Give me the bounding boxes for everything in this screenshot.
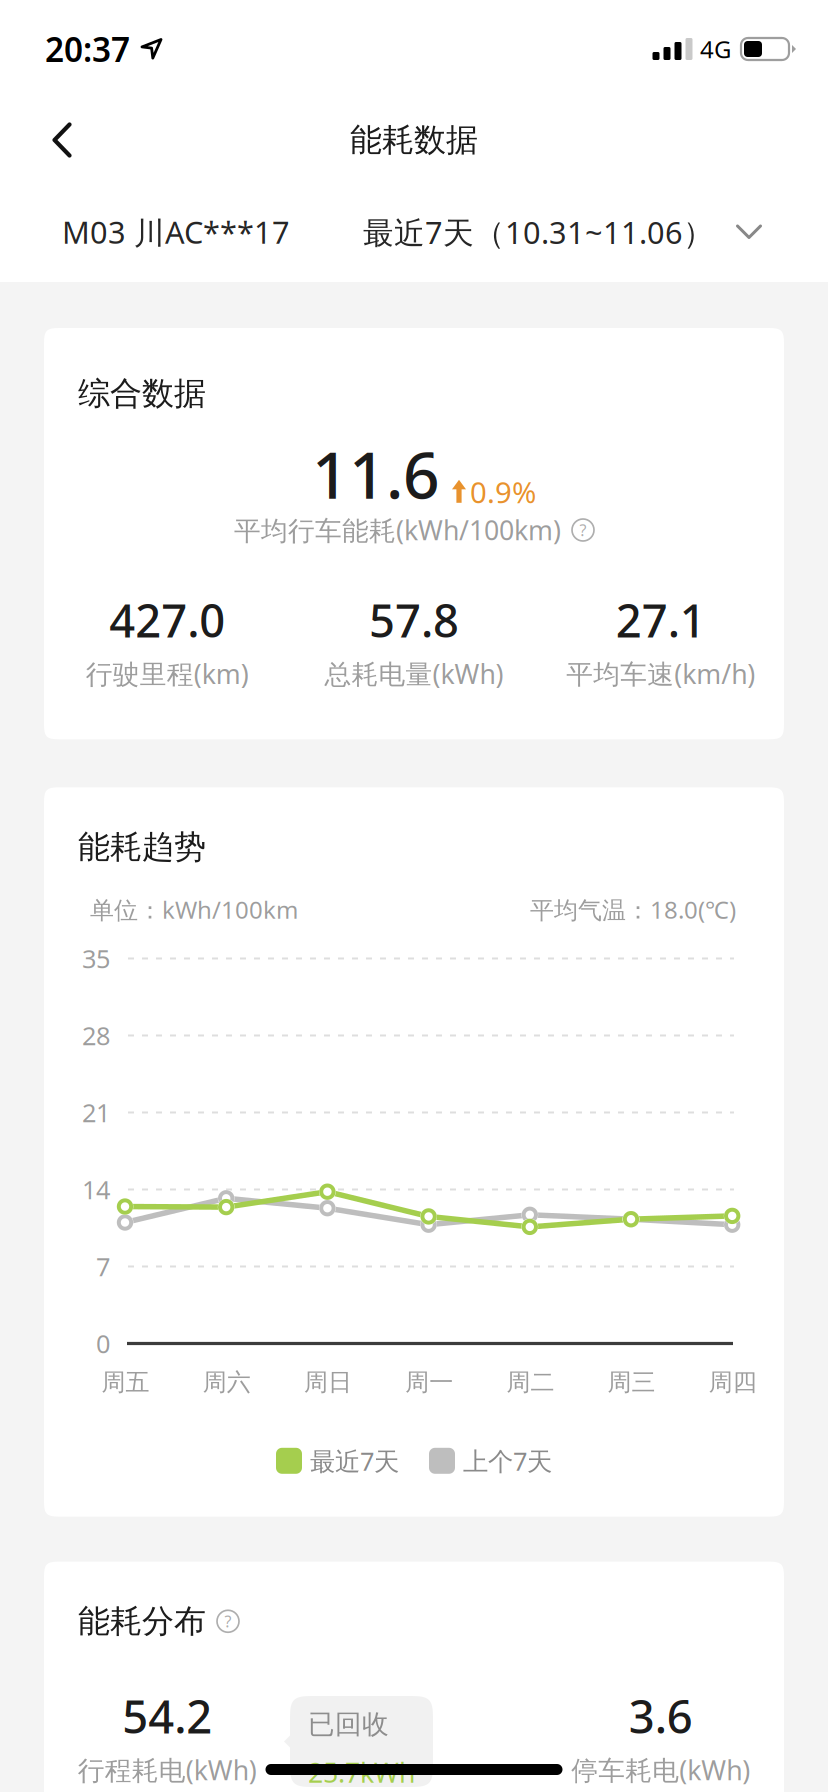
staticText: 14 — [82, 1173, 110, 1206]
staticText: 周三 — [608, 1367, 656, 1397]
staticText: 上个7天 — [463, 1444, 552, 1478]
staticText: 35 — [82, 942, 110, 975]
staticText: 周二 — [506, 1367, 554, 1397]
staticText: 28 — [82, 1019, 110, 1052]
staticText: 21 — [82, 1096, 110, 1129]
staticText: 最近7天 — [310, 1444, 399, 1478]
staticText: 行程耗电(kWh) — [78, 1752, 257, 1787]
staticText: 周日 — [304, 1367, 352, 1397]
staticText: 7 — [96, 1250, 110, 1283]
staticText: 能耗趋势 — [78, 827, 206, 867]
staticText: 4G — [700, 33, 731, 65]
staticText: M03 川AC***17 — [62, 212, 290, 252]
staticText: 11.6 — [312, 431, 440, 516]
staticText: 周六 — [203, 1367, 251, 1397]
button[interactable]: 最近7天（10.31~11.06） — [363, 212, 762, 252]
staticText: 能耗分布 — [78, 1602, 206, 1641]
staticText: 平均车速(km/h) — [566, 656, 755, 691]
staticText: 周五 — [102, 1367, 150, 1397]
staticText: 周一 — [405, 1367, 453, 1397]
staticText: 27.1 — [616, 590, 706, 650]
staticText: 周四 — [709, 1367, 757, 1397]
staticText: 已回收 — [308, 1708, 389, 1741]
staticText: 25.7kWh — [308, 1755, 415, 1790]
staticText: 57.8 — [369, 590, 459, 650]
staticText: 54.2 — [122, 1686, 212, 1746]
staticText: ? — [579, 519, 586, 541]
staticText: ? — [224, 1611, 231, 1632]
staticText: 单位：kWh/100km — [90, 894, 298, 925]
button[interactable]: Back — [0, 98, 124, 182]
staticText: 综合数据 — [78, 374, 206, 413]
staticText: 总耗电量(kWh) — [324, 656, 503, 691]
staticText: 20:37 — [45, 27, 130, 71]
staticText: 427.0 — [109, 590, 225, 650]
staticText: 停车耗电(kWh) — [571, 1752, 750, 1787]
staticText: 0.9% — [470, 472, 536, 511]
staticText: 0 — [96, 1327, 110, 1360]
staticText: 最近7天（10.31~11.06） — [363, 212, 714, 252]
staticText: 平均行车能耗(kWh/100km) — [234, 512, 561, 548]
staticText: 行驶里程(km) — [86, 656, 249, 691]
staticText: 平均气温：18.0(℃) — [530, 894, 736, 925]
staticText: 能耗数据 — [350, 120, 478, 160]
staticText: 3.6 — [629, 1686, 693, 1746]
